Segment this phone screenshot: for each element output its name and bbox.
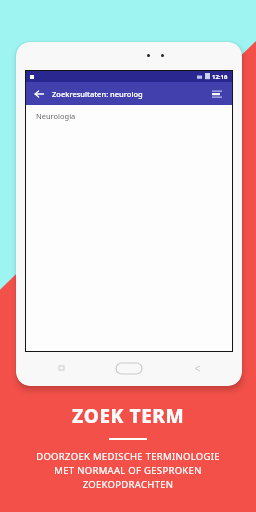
button[interactable]: Home [116, 363, 142, 374]
button[interactable]: Sort results [208, 85, 226, 103]
staticText: ZOEK TERM [72, 403, 185, 429]
button[interactable]: Back [190, 361, 204, 375]
button[interactable]: Back [31, 86, 47, 102]
staticText: DOORZOEK MEDISCHE TERMINOLOGIE MET NORMA… [0, 450, 256, 491]
button[interactable]: Neurologia [26, 105, 232, 127]
staticText: 12:16 [212, 73, 228, 81]
staticText: Zoekresultaten: neurolog [52, 89, 143, 99]
button[interactable]: Recent apps [54, 361, 68, 375]
staticText: Neurologia [36, 111, 76, 121]
